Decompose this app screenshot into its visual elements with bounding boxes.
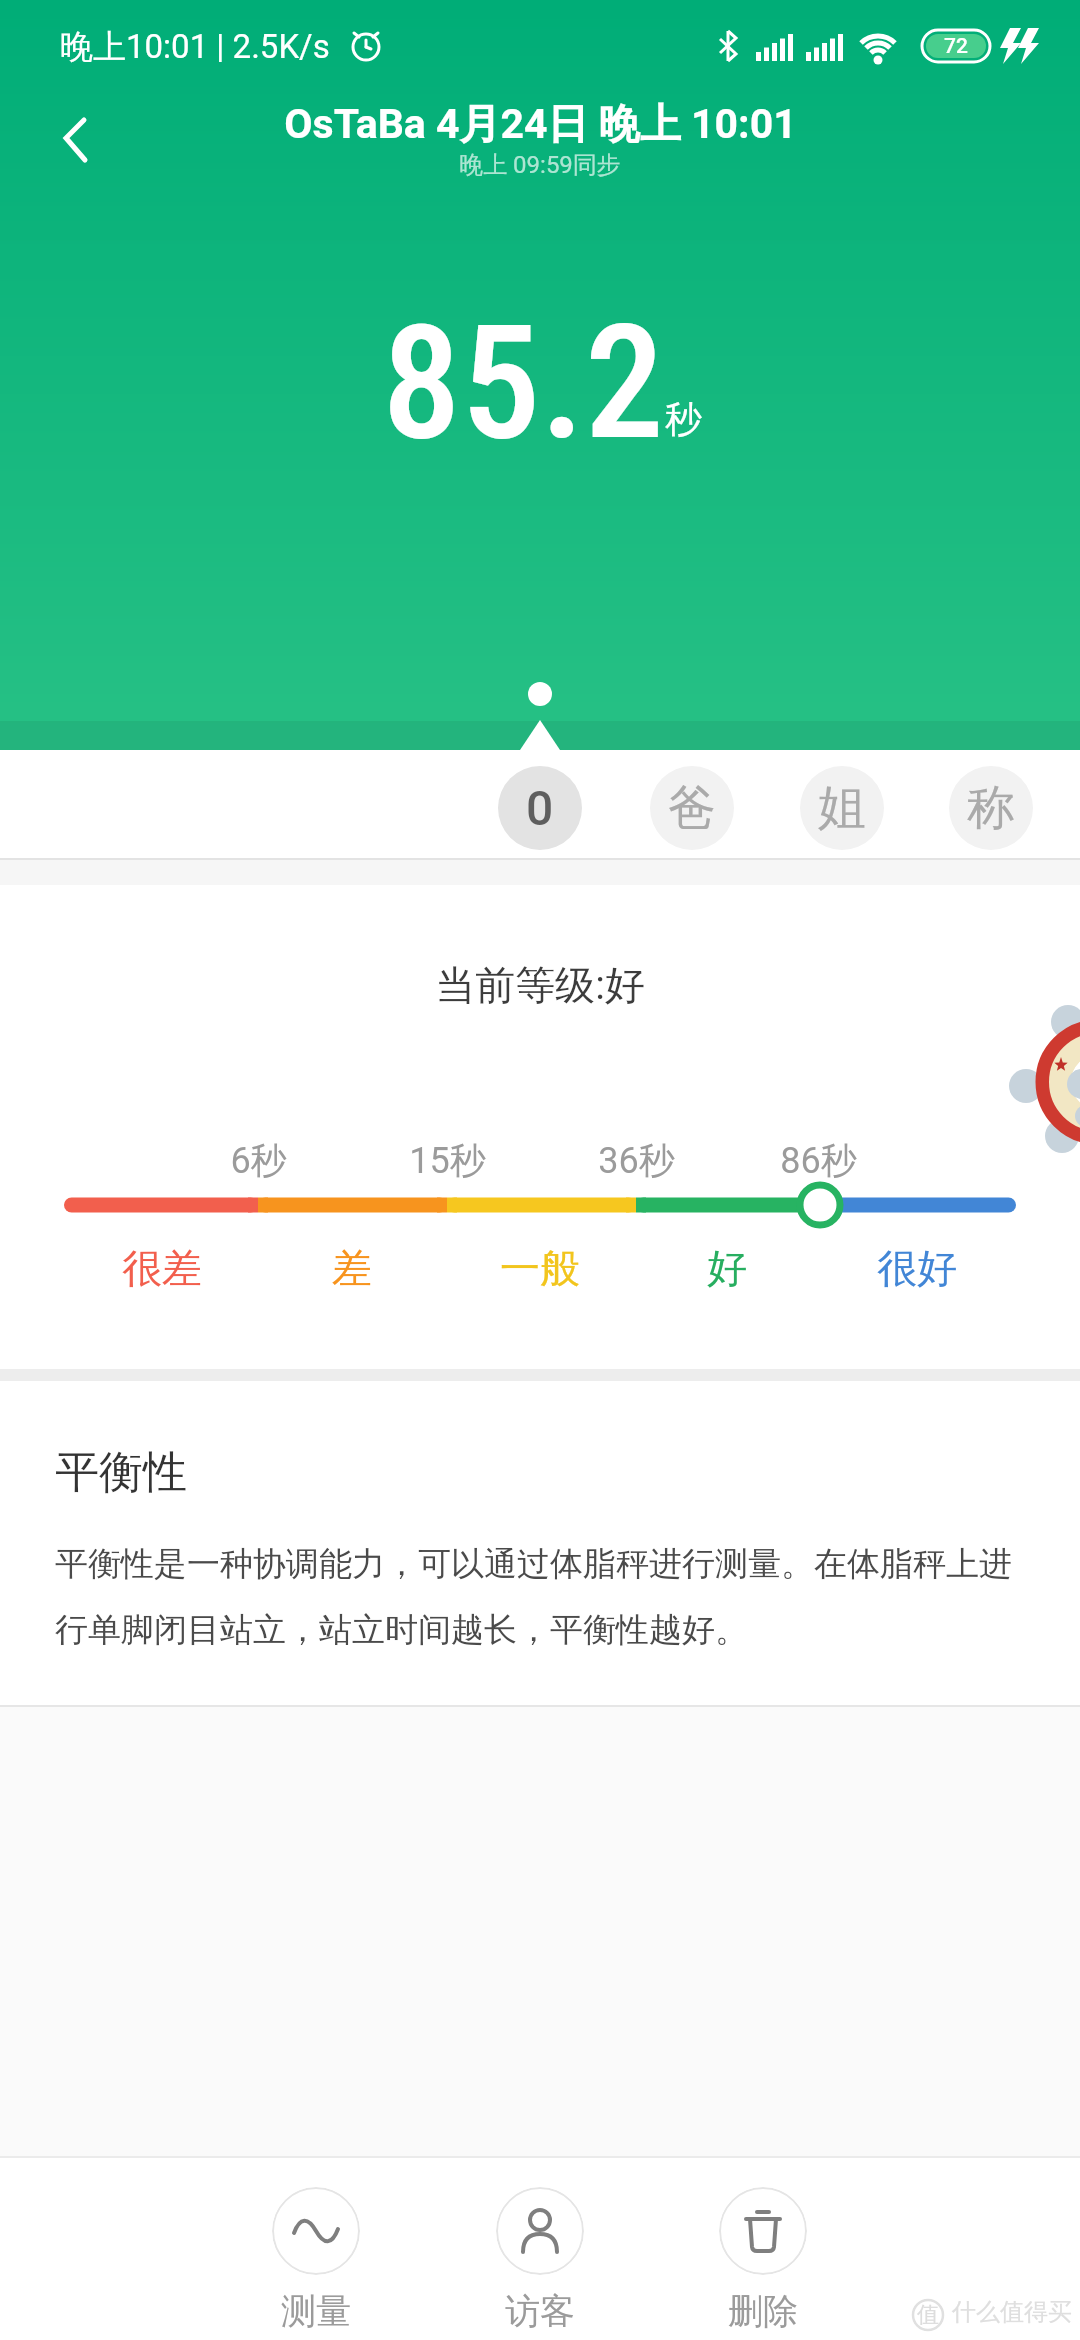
- staticText: 当前等级:好: [435, 960, 645, 1010]
- staticText: 访客: [505, 2289, 575, 2333]
- staticText: 好: [707, 1243, 747, 1293]
- staticText: 很差: [122, 1243, 202, 1293]
- staticText: 什么值得买: [952, 2297, 1072, 2327]
- staticText: 晚上 09:59同步: [459, 150, 621, 180]
- staticText: 86秒: [780, 1138, 857, 1183]
- staticText: 很好: [877, 1243, 957, 1293]
- button[interactable]: [711, 2184, 815, 2340]
- staticText: 平衡性: [55, 1445, 187, 1500]
- staticText: 72: [944, 34, 968, 59]
- staticText: 36秒: [598, 1138, 675, 1183]
- staticText: 删除: [728, 2289, 798, 2333]
- button[interactable]: [488, 2184, 592, 2340]
- staticText: 行单脚闭目站立，站立时间越长，平衡性越好。: [55, 1609, 748, 1651]
- staticText: 称: [967, 778, 1015, 838]
- staticText: OsTaBa 4月24日 晚上 10:01: [284, 99, 797, 151]
- staticText: 姐: [818, 778, 866, 838]
- button[interactable]: [264, 2184, 368, 2340]
- staticText: 值: [917, 2301, 939, 2329]
- button[interactable]: 姐: [800, 766, 884, 850]
- staticText: 秒: [665, 396, 702, 443]
- staticText: 6秒: [230, 1138, 287, 1183]
- staticText: 一般: [500, 1243, 580, 1293]
- staticText: 15秒: [409, 1138, 486, 1183]
- button[interactable]: 爸: [650, 766, 734, 850]
- staticText: 爸: [668, 778, 716, 838]
- staticText: 晚上10:01 | 2.5K/s: [60, 26, 330, 68]
- staticText: 85.2: [382, 290, 664, 475]
- staticText: 差: [332, 1243, 372, 1293]
- button[interactable]: 称: [949, 766, 1033, 850]
- staticText: 0: [526, 780, 554, 836]
- staticText: 平衡性是一种协调能力，可以通过体脂秤进行测量。在体脂秤上进: [55, 1543, 1012, 1585]
- button[interactable]: 0: [498, 766, 582, 850]
- staticText: 测量: [281, 2289, 351, 2333]
- button[interactable]: [36, 98, 112, 182]
